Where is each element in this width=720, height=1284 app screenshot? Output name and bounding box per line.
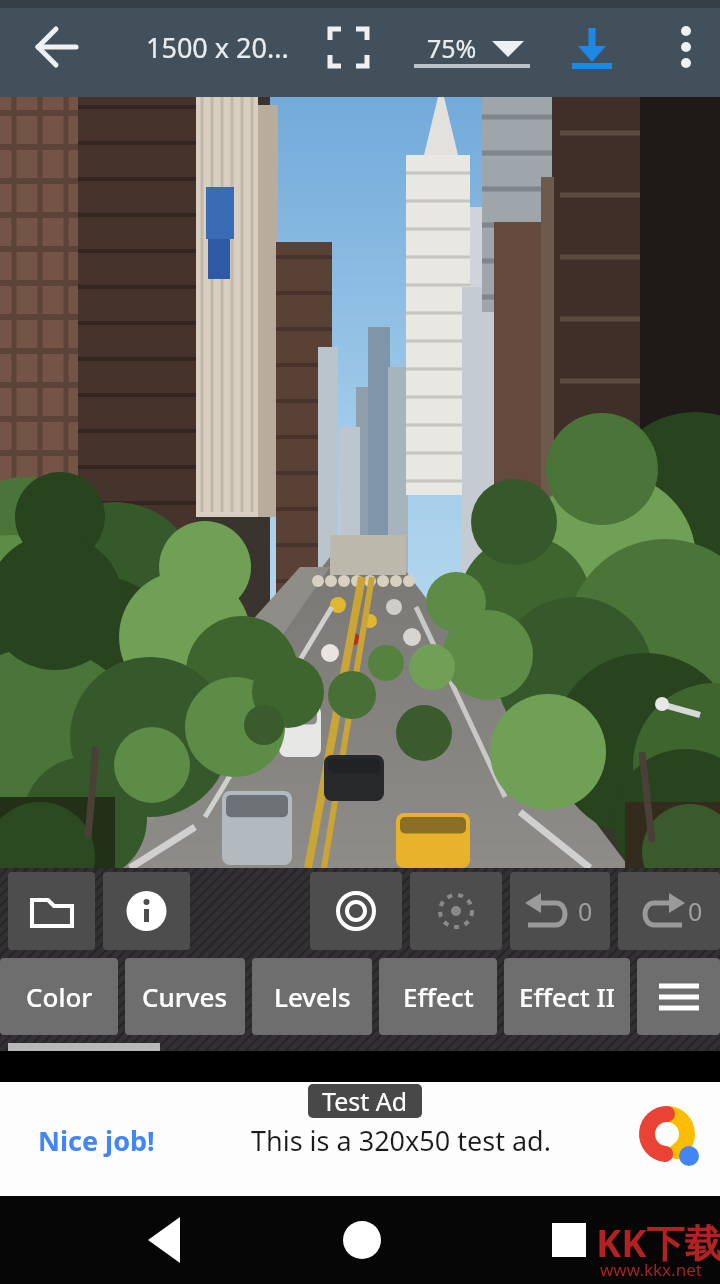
staticText: Levels [274, 979, 351, 1014]
staticText: KK下载 [596, 1216, 720, 1268]
staticText: This is a 320x50 test ad. [251, 1122, 551, 1159]
staticText: Test Ad [322, 1084, 408, 1118]
staticText: Effect [403, 979, 474, 1014]
staticText: 0 [578, 894, 593, 928]
staticText: Color [26, 979, 93, 1014]
staticText: Nice job! [38, 1122, 155, 1159]
staticText: 0 [688, 894, 703, 928]
staticText: Effect II [519, 979, 615, 1014]
staticText: www.kkx.net [600, 1258, 702, 1281]
staticText: 75% [427, 31, 477, 65]
staticText: Curves [142, 979, 228, 1014]
staticText: 1500 x 20... [146, 29, 289, 66]
